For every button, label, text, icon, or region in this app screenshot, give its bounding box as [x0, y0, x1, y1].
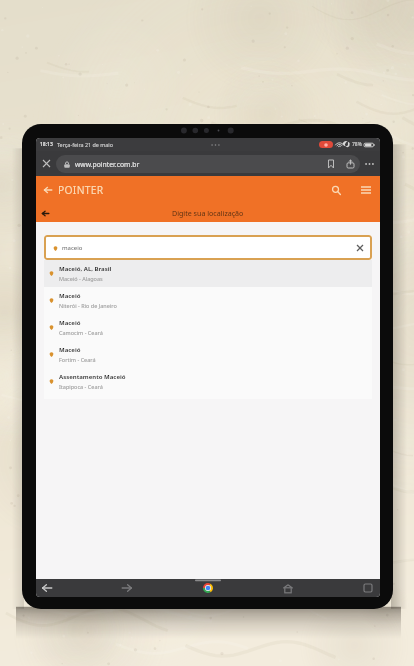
button[interactable]: Back: [37, 579, 57, 597]
button[interactable]: Clear: [353, 241, 367, 255]
staticText: Itapipoca - Ceará: [59, 383, 103, 390]
staticText: Digite sua localização: [172, 208, 244, 218]
staticText: Maceió - Alagoas: [59, 275, 103, 282]
button[interactable]: Maceió: [44, 287, 372, 314]
button[interactable]: Back: [39, 181, 57, 199]
button[interactable]: Search: [327, 181, 345, 199]
staticText: Maceió, AL, Brasil: [59, 265, 112, 273]
button[interactable]: maceio: [44, 235, 372, 260]
button[interactable]: Home: [278, 579, 298, 597]
button[interactable]: Back: [36, 204, 54, 222]
button[interactable]: Forward: [117, 579, 137, 597]
staticText: Assentamento Maceió: [59, 373, 126, 381]
button[interactable]: Maceió: [44, 314, 372, 341]
button[interactable]: Menu: [357, 181, 375, 199]
button[interactable]: Recent apps: [358, 579, 378, 597]
staticText: Camocim - Ceará: [59, 329, 103, 336]
staticText: Niterói - Rio de Janeiro: [59, 302, 117, 309]
button[interactable]: Bookmark: [323, 156, 339, 172]
staticText: 18:13: [40, 141, 53, 148]
button[interactable]: Close tab: [38, 155, 55, 172]
button[interactable]: www.pointer.com.br: [56, 155, 360, 173]
staticText: Maceió: [59, 292, 81, 300]
button[interactable]: Share: [342, 156, 358, 172]
staticText: Fortim - Ceará: [59, 356, 96, 363]
staticText: POINTER: [58, 183, 104, 197]
staticText: Terça-feira 21 de maio: [57, 141, 113, 148]
staticText: Maceió: [59, 346, 81, 354]
button[interactable]: Maceió: [44, 341, 372, 368]
staticText: maceio: [62, 244, 83, 252]
staticText: www.pointer.com.br: [75, 160, 140, 169]
button[interactable]: More options: [361, 155, 378, 172]
button[interactable]: Assentamento Maceió: [44, 368, 372, 395]
button[interactable]: Chrome: [198, 579, 218, 597]
button[interactable]: Maceió, AL, Brasil: [44, 260, 372, 287]
staticText: Maceió: [59, 319, 81, 327]
staticText: 78%: [352, 141, 362, 148]
